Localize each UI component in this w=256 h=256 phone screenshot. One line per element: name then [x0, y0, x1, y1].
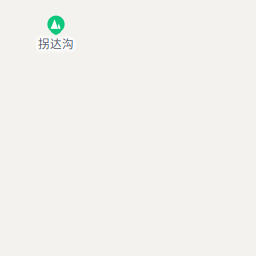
staticText: 拐达沟	[38, 35, 74, 51]
staticText: 拐达沟	[38, 35, 74, 51]
button[interactable]: 拐达沟	[0, 0, 256, 256]
